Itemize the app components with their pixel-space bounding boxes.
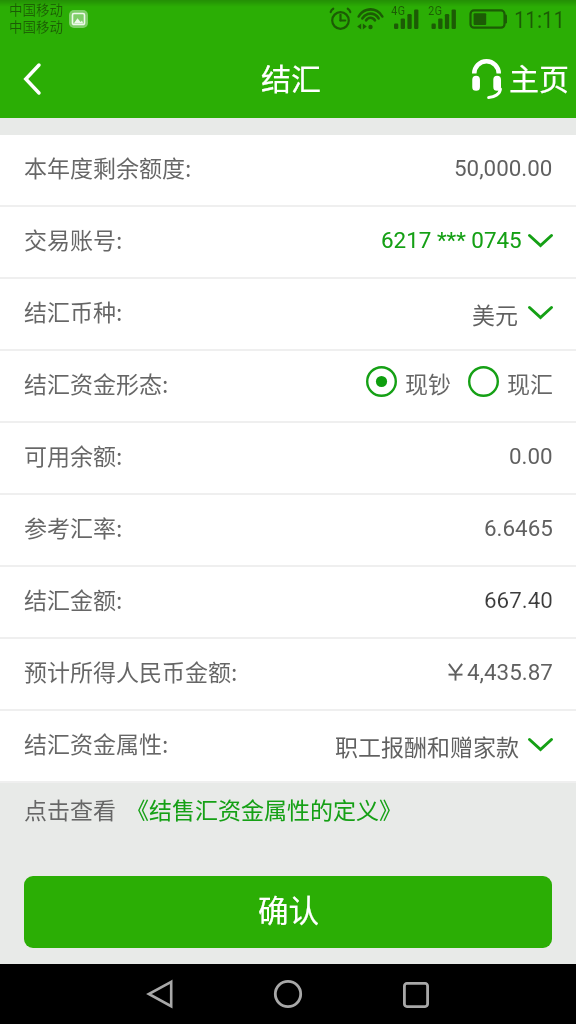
staticText: 2G [428,3,443,18]
staticText: 结汇币种: [24,294,123,327]
staticText: 预计所得人民币金额: [24,654,238,687]
staticText: 4G [391,3,406,18]
button[interactable]: Back [130,964,190,1024]
button[interactable]: 现汇 [468,370,553,403]
staticText: 职工报酬和赠家款 [335,729,519,762]
staticText: 可用余额: [24,438,123,471]
staticText: 结汇资金属性: [24,726,169,759]
staticText: 50,000.00 [454,155,553,181]
staticText: 交易账号: [24,222,123,255]
staticText: 点击查看 [24,792,116,825]
staticText: 11:11 [514,7,565,34]
staticText: 中国移动 [9,16,63,36]
staticText: 结汇资金形态: [24,366,169,399]
staticText: 美元 [472,297,518,330]
staticText: 参考汇率: [24,510,123,543]
staticText: 本年度剩余额度: [24,150,192,183]
button[interactable]: 本年度剩余额度: [0,135,576,207]
button[interactable]: Back [0,40,64,118]
button[interactable]: 结汇金额: [0,567,576,639]
staticText: 现钞 [405,366,451,399]
staticText: 《结售汇资金属性的定义》 [126,792,402,825]
button[interactable]: 交易账号: [0,207,576,279]
button[interactable]: 结汇资金形态: [0,351,576,423]
button[interactable]: 预计所得人民币金额: [0,639,576,711]
button[interactable]: 点击查看 [0,783,576,835]
button[interactable]: Home [258,964,318,1024]
staticText: 667.40 [484,587,553,613]
button[interactable]: 结汇资金属性: [0,711,576,783]
staticText: 现汇 [507,366,553,399]
button[interactable]: 可用余额: [0,423,576,495]
button[interactable]: 主页 [471,40,576,118]
staticText: 6217 *** 0745 [381,227,522,253]
staticText: 结汇金额: [24,582,123,615]
staticText: 主页 [509,55,569,98]
staticText: 结汇 [261,55,321,98]
button[interactable]: 参考汇率: [0,495,576,567]
button[interactable]: 确认 [24,876,552,948]
staticText: 0.00 [509,443,553,469]
staticText: 确认 [258,887,319,931]
staticText: 中国移动 [9,0,63,19]
button[interactable]: 现钞 [366,370,451,403]
button[interactable]: Recent apps [386,964,446,1024]
staticText: 4,435.87 [467,659,553,685]
button[interactable]: 结汇币种: [0,279,576,351]
staticText: 6.6465 [484,515,553,541]
